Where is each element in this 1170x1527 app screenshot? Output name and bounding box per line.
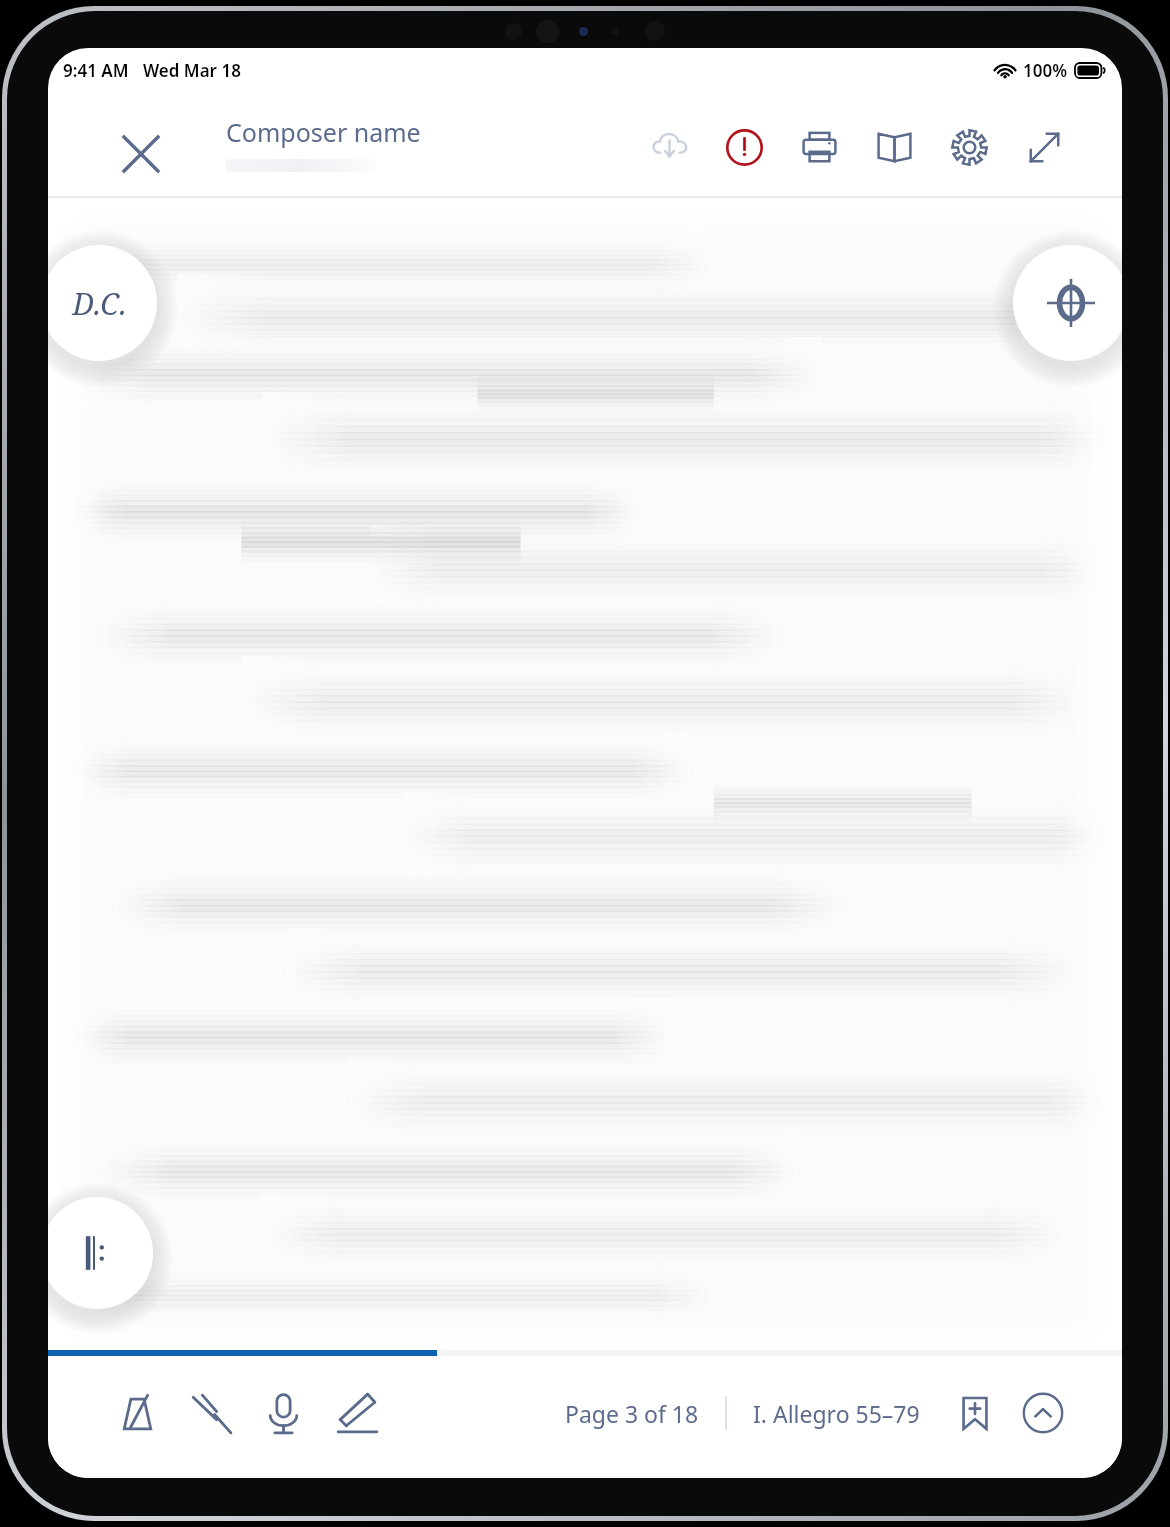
button[interactable]: Download bbox=[643, 121, 695, 173]
staticText: Page 3 of 18 bbox=[565, 1398, 699, 1429]
button[interactable]: Settings bbox=[943, 121, 995, 173]
staticText: Composer name bbox=[226, 115, 421, 149]
button[interactable]: Repeat sign bbox=[48, 1197, 153, 1309]
staticText: 9:41 AM bbox=[63, 59, 129, 82]
button[interactable]: Page 3 of 18 bbox=[559, 1390, 705, 1437]
staticText: I. Allegro 55–79 bbox=[753, 1398, 920, 1429]
button[interactable]: Show more bbox=[1014, 1384, 1072, 1442]
button[interactable]: Full screen bbox=[1018, 121, 1070, 173]
button[interactable]: Print bbox=[793, 121, 845, 173]
staticText: D.C. bbox=[72, 283, 127, 324]
button[interactable]: I. Allegro 55–79 bbox=[747, 1390, 926, 1437]
button[interactable]: Coda bbox=[1013, 245, 1122, 361]
button[interactable]: Close bbox=[110, 123, 172, 185]
button[interactable]: Alert bbox=[718, 121, 770, 173]
button[interactable]: Record bbox=[252, 1382, 314, 1444]
button[interactable]: Da Capo bbox=[48, 245, 157, 361]
button[interactable]: Add bookmark bbox=[948, 1386, 1002, 1440]
button[interactable]: Tuner bbox=[179, 1382, 241, 1444]
button[interactable]: Annotate bbox=[325, 1382, 387, 1444]
button[interactable]: Metronome bbox=[106, 1382, 168, 1444]
staticText: 100% bbox=[1023, 59, 1068, 82]
button[interactable]: Page view bbox=[868, 121, 920, 173]
staticText: Wed Mar 18 bbox=[143, 59, 241, 82]
